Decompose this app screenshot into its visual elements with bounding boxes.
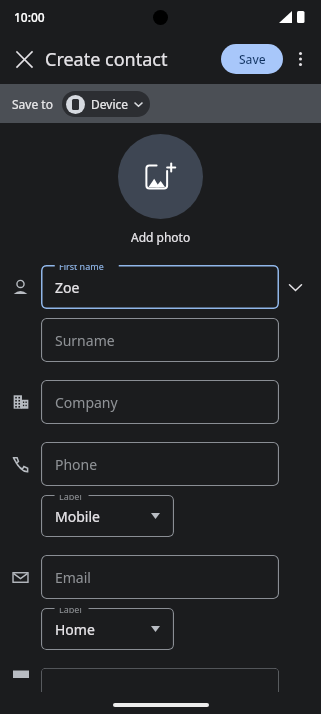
button[interactable]: Surname: [41, 318, 279, 362]
staticText: Save to: [12, 96, 53, 112]
button[interactable]: Add photo: [118, 134, 203, 219]
staticText: Create contact: [45, 47, 168, 72]
button[interactable]: Expand name fields: [279, 271, 311, 303]
staticText: 10:00: [14, 9, 45, 25]
staticText: Mobile: [55, 507, 100, 526]
button[interactable]: More options: [283, 42, 317, 76]
button[interactable]: Label: [41, 495, 174, 537]
staticText: First name: [59, 265, 104, 272]
staticText: Label: [59, 608, 82, 615]
staticText: Label: [59, 495, 82, 502]
button[interactable]: [41, 668, 279, 692]
staticText: Device: [91, 96, 129, 112]
staticText: Add photo: [131, 229, 191, 245]
staticText: Save: [239, 51, 266, 67]
button[interactable]: Company: [41, 380, 279, 424]
button[interactable]: Close: [6, 41, 42, 77]
staticText: Phone: [55, 455, 98, 474]
button[interactable]: Save: [221, 44, 283, 74]
button[interactable]: Zoe: [41, 265, 279, 309]
button[interactable]: Phone: [41, 442, 279, 486]
staticText: Surname: [55, 331, 115, 350]
button[interactable]: Device: [62, 91, 150, 117]
staticText: Home: [55, 620, 95, 639]
staticText: Email: [55, 568, 91, 587]
button[interactable]: Email: [41, 555, 279, 599]
button[interactable]: Label: [41, 608, 174, 650]
staticText: Company: [55, 393, 118, 412]
staticText: Zoe: [55, 278, 80, 297]
